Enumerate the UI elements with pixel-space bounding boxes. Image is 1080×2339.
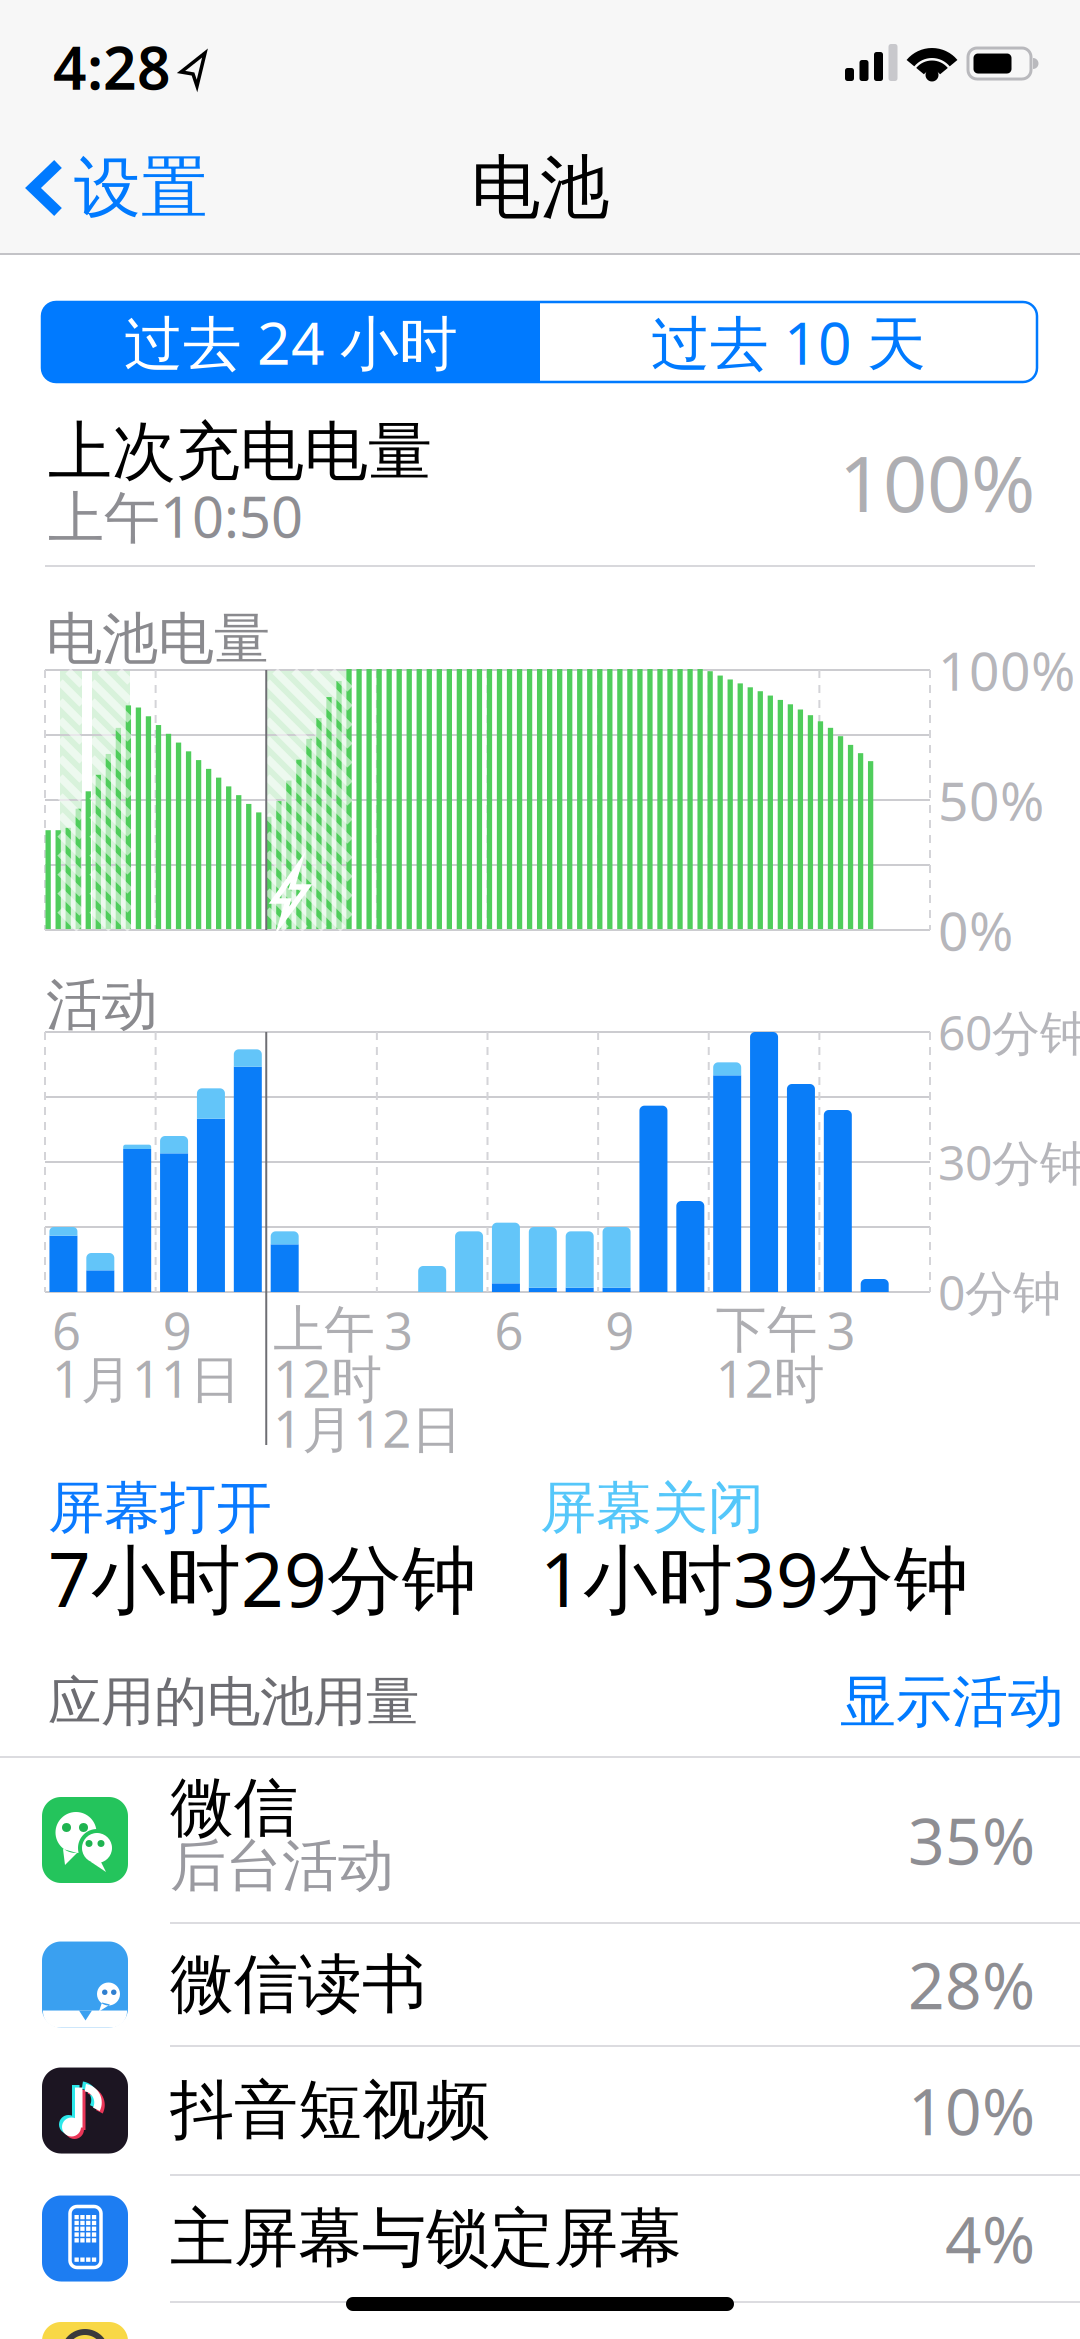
staticText: 下午: [716, 1299, 818, 1361]
button[interactable]: 过去 24 小时: [42, 302, 540, 382]
staticText: 电池电量: [46, 605, 270, 673]
staticText: 主屏幕与锁定屏幕: [170, 2199, 682, 2278]
staticText: 上午: [273, 1299, 375, 1361]
staticText: 过去 10 天: [651, 303, 926, 381]
staticText: 1小时39分钟: [540, 1528, 969, 1628]
staticText: 9: [163, 1296, 192, 1364]
staticText: 6: [52, 1296, 81, 1364]
staticText: 应用的电池用量: [48, 1669, 419, 1735]
staticText: 100%: [938, 635, 1075, 705]
staticText: 抖音短视频: [170, 2071, 490, 2150]
staticText: 屏幕打开: [48, 1474, 272, 1542]
staticText: 12时: [273, 1344, 382, 1412]
staticText: 4%: [945, 2196, 1035, 2281]
staticText: 7小时29分钟: [48, 1528, 477, 1628]
button[interactable]: 显示活动: [840, 1668, 1064, 1736]
button[interactable]: 微信: [0, 1758, 1080, 1922]
staticText: 屏幕关闭: [540, 1474, 764, 1542]
button[interactable]: 抖音短视频: [0, 2047, 1080, 2174]
staticText: 10%: [908, 2068, 1035, 2153]
staticText: 0%: [938, 895, 1013, 965]
button[interactable]: 微信读书: [0, 1924, 1080, 2045]
staticText: 显示活动: [840, 1668, 1064, 1736]
staticText: 50%: [938, 765, 1044, 835]
staticText: 6: [494, 1296, 523, 1364]
staticText: 微信: [170, 1769, 298, 1847]
staticText: 9: [605, 1296, 634, 1364]
staticText: 30分钟: [938, 1130, 1080, 1194]
staticText: 过去 24 小时: [124, 303, 458, 381]
staticText: 4:28: [53, 28, 171, 106]
staticText: 后台活动: [170, 1832, 394, 1900]
button[interactable]: 主屏幕与锁定屏幕: [0, 2176, 1080, 2301]
staticText: 3: [384, 1296, 413, 1364]
staticText: 60分钟: [938, 1000, 1080, 1064]
staticText: 微信读书: [170, 1945, 426, 2024]
staticText: 活动: [46, 971, 158, 1039]
staticText: 35%: [908, 1797, 1035, 1882]
staticText: 设置: [74, 147, 208, 229]
staticText: 1月11日: [52, 1344, 241, 1412]
staticText: 1月12日: [273, 1394, 462, 1462]
staticText: 上午10:50: [48, 479, 303, 553]
button[interactable]: 过去 10 天: [540, 302, 1037, 382]
staticText: 12时: [716, 1344, 825, 1412]
staticText: 100%: [839, 431, 1035, 533]
staticText: 3: [826, 1296, 855, 1364]
staticText: 0分钟: [938, 1260, 1061, 1324]
button[interactable]: 设置: [28, 143, 208, 233]
staticText: 上次充电电量: [48, 413, 432, 491]
staticText: 电池: [471, 145, 609, 231]
staticText: 28%: [908, 1942, 1035, 2027]
